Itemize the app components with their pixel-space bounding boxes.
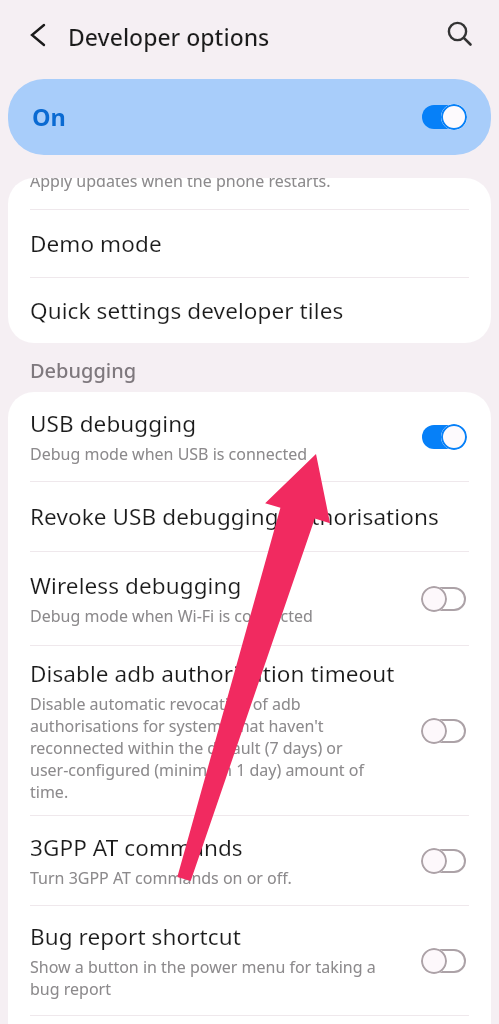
button[interactable]: Bug report shortcut [8,906,491,1015]
staticText: Demo mode [30,228,162,259]
button[interactable]: Disable adb authorisation timeout [8,646,491,815]
staticText: Bug report shortcut [30,921,241,952]
staticText: Debug mode when Wi-Fi is connected [30,605,313,627]
button[interactable]: Wireless debugging [8,552,491,645]
staticText: Turn 3GPP AT commands on or off. [30,867,292,889]
button[interactable]: USB debugging [8,392,491,481]
staticText: Disable automatic revocation of adb auth… [30,693,364,803]
staticText: Apply updates when the phone restarts. [30,178,331,192]
button[interactable]: On [8,79,491,155]
staticText: USB debugging [30,408,197,439]
button[interactable]: Demo mode [8,210,491,277]
button[interactable]: Revoke USB debugging authorisations [8,482,491,551]
staticText: Debugging [30,357,137,384]
button[interactable]: 3GPP AT commands [8,816,491,905]
staticText: Revoke USB debugging authorisations [30,501,439,532]
staticText: Show a button in the power menu for taki… [30,956,376,1000]
staticText: Wireless debugging [30,570,242,601]
button[interactable]: Apply updates when the phone restarts. [8,178,491,209]
staticText: 3GPP AT commands [30,832,243,863]
staticText: Quick settings developer tiles [30,295,344,326]
staticText: On [32,101,66,133]
staticText: Disable adb authorisation timeout [30,658,395,689]
staticText: Debug mode when USB is connected [30,443,308,465]
staticText: Developer options [68,21,270,52]
button[interactable]: Quick settings developer tiles [8,278,491,343]
